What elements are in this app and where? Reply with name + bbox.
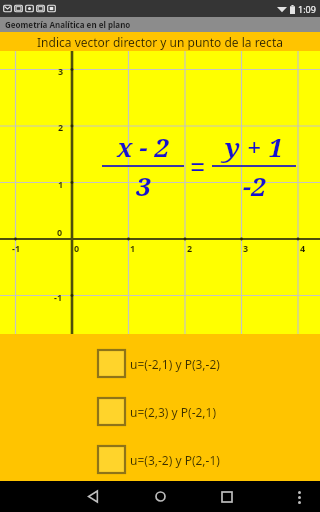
staticText: u=(-2,1) y P(3,-2) — [130, 356, 220, 372]
staticText: 3 — [58, 65, 64, 77]
staticText: Geometría Analítica en el plano — [5, 19, 131, 30]
button[interactable]: u=(-2,1) y P(3,-2) — [98, 350, 320, 377]
staticText: 0 — [74, 242, 80, 254]
staticText: Indica vector director y un punto de la … — [37, 34, 283, 50]
staticText: u=(2,3) y P(-2,1) — [130, 404, 217, 420]
button[interactable]: u=(3,-2) y P(2,-1) — [98, 446, 320, 473]
staticText: -1 — [12, 242, 21, 254]
staticText: −2 — [243, 168, 266, 203]
staticText: 0 — [57, 226, 63, 238]
staticText: 1 — [58, 178, 64, 190]
staticText: y + 1 — [225, 129, 283, 164]
staticText: 3 — [136, 168, 151, 203]
staticText: 2 — [58, 121, 64, 133]
staticText: 4 — [300, 242, 306, 254]
staticText: x − 2 — [117, 129, 169, 164]
button[interactable]: More options — [284, 482, 314, 512]
staticText: 1:09 — [298, 3, 316, 15]
button[interactable]: u=(2,3) y P(-2,1) — [98, 398, 320, 425]
staticText: 2 — [187, 242, 193, 254]
staticText: = — [190, 148, 206, 185]
staticText: 1 — [130, 242, 136, 254]
staticText: u=(3,-2) y P(2,-1) — [130, 452, 220, 468]
button[interactable]: Back — [76, 481, 110, 512]
staticText: 3 — [243, 242, 249, 254]
button[interactable]: Recent apps — [210, 481, 244, 512]
button[interactable]: Home — [143, 481, 177, 512]
staticText: -1 — [54, 291, 63, 303]
